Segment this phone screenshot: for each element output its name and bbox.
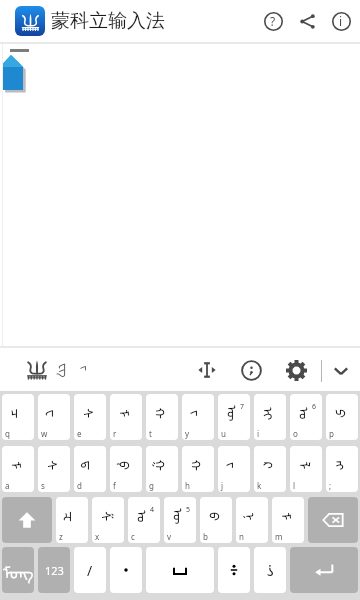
button[interactable] [308, 497, 358, 543]
button[interactable]: ᠯ [290, 446, 322, 492]
button[interactable]: ᠮᠣᠩ [2, 547, 34, 593]
button[interactable]: ᠫ [326, 394, 358, 440]
staticText: c [131, 531, 135, 542]
staticText: ᠯ [294, 461, 317, 469]
staticText: e [77, 428, 82, 439]
staticText: ᠮᠣᠩ [3, 556, 34, 584]
button[interactable]: Info [324, 4, 358, 38]
staticText: 5 [186, 505, 191, 515]
button[interactable]: ᠱ [92, 497, 124, 543]
staticText: r [113, 428, 117, 439]
button[interactable]: ᠺ [254, 446, 286, 492]
button[interactable]: Mongolian mode [56, 356, 76, 384]
staticText: ᠸᠭ [56, 363, 77, 378]
staticText: ᠵ [223, 462, 246, 469]
staticText: ᠣ [133, 510, 156, 523]
staticText: i [257, 428, 260, 439]
button[interactable]: ᠬ [146, 394, 178, 440]
button[interactable] [290, 547, 358, 593]
staticText: j [221, 480, 224, 491]
button[interactable]: ᠮ [2, 446, 34, 492]
staticText: h [185, 480, 190, 491]
button[interactable]: ؟ [254, 547, 286, 593]
staticText: k [257, 480, 262, 491]
staticText: ᠵ [187, 410, 210, 417]
staticText: ᠤ [295, 407, 318, 420]
staticText: w [41, 428, 48, 439]
staticText: b [203, 531, 208, 542]
button[interactable]: ᠬ [182, 446, 214, 492]
button[interactable]: ᠴ [2, 394, 34, 440]
button[interactable]: ᠹ [110, 446, 142, 492]
button[interactable]: Move cursor [195, 358, 219, 382]
button[interactable]: ᠸ [38, 394, 70, 440]
button[interactable]: ᠦ [218, 394, 250, 440]
button[interactable]: Settings [286, 360, 307, 381]
staticText: s [41, 480, 45, 491]
button[interactable]: Punctuation [241, 360, 262, 381]
button[interactable]: ᠽ [56, 497, 88, 543]
button[interactable]: ᠭ [146, 446, 178, 492]
button[interactable]: Hide keyboard [330, 360, 352, 382]
staticText: ᠰ [42, 460, 65, 470]
button[interactable]: ᠰ [38, 446, 70, 492]
staticText: ᠵ [77, 365, 96, 371]
button[interactable]: Share [290, 4, 324, 38]
staticText: p [329, 428, 334, 439]
button[interactable]: ᠥ [164, 497, 196, 543]
button[interactable]: ᠪ [200, 497, 232, 543]
button[interactable]: ᠰ [74, 394, 106, 440]
button[interactable]: ᠢ [254, 394, 286, 440]
staticText: z [59, 531, 63, 542]
button[interactable]: ᠮ [110, 394, 142, 440]
staticText: 123 [45, 563, 64, 578]
button[interactable]: ᠳ [74, 446, 106, 492]
staticText: 6 [312, 402, 317, 412]
staticText: ᠬ [150, 407, 173, 419]
staticText: ᠮ [276, 512, 299, 520]
staticText: y [185, 428, 190, 439]
staticText: i [339, 13, 343, 29]
staticText: ᠴ [6, 408, 29, 418]
staticText: ᠱ [96, 511, 119, 521]
button[interactable]: ᠤ [290, 394, 322, 440]
staticText: ᠮ [114, 409, 137, 417]
staticText: t [149, 428, 152, 439]
staticText: n [239, 531, 244, 542]
button[interactable]: ᠣ [128, 497, 160, 543]
staticText: ᠰ [78, 408, 101, 418]
button[interactable] [146, 547, 214, 593]
staticText: ᠹ [115, 461, 138, 470]
button[interactable]: ᠵ [182, 394, 214, 440]
staticText: ᠢ [259, 407, 282, 420]
staticText: ᠬ [186, 459, 209, 471]
button[interactable] [218, 547, 250, 593]
staticText: g [149, 480, 154, 491]
staticText: ᠽ [61, 511, 84, 522]
button[interactable]: 123 [38, 547, 70, 593]
staticText: ᠳ [78, 460, 101, 470]
staticText: ᠸ [42, 409, 65, 417]
button[interactable] [110, 547, 142, 593]
button[interactable]: ᠮ [272, 497, 304, 543]
button[interactable]: / [74, 547, 106, 593]
staticText: ᠺ [258, 461, 281, 469]
staticText: ᠮ [6, 461, 29, 469]
staticText: / [87, 561, 93, 580]
staticText: 蒙科立输入法 [51, 9, 165, 33]
button[interactable]: Help [256, 4, 290, 38]
staticText: l [293, 480, 296, 491]
button[interactable]: ᠨ [236, 497, 268, 543]
button[interactable]: ᠵ [218, 446, 250, 492]
button[interactable]: Latin mode [78, 356, 96, 380]
staticText: ᠨ [240, 512, 263, 520]
staticText: u [221, 428, 226, 439]
staticText: ? [270, 13, 276, 29]
staticText: v [167, 531, 172, 542]
staticText: d [77, 480, 82, 491]
button[interactable]: Input mode [25, 358, 49, 382]
staticText: x [95, 531, 100, 542]
button[interactable] [2, 497, 52, 543]
staticText: q [5, 428, 10, 439]
button[interactable]: ᠩ [326, 446, 358, 492]
